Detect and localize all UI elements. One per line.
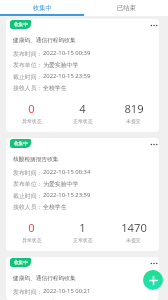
staticText: 收集中 xyxy=(14,141,28,147)
button[interactable]: 收集中 xyxy=(10,139,31,148)
staticText: 截止时间： xyxy=(13,73,43,80)
staticText: 2022-10-15 23:59 xyxy=(43,72,91,80)
staticText: 异常状态 xyxy=(22,118,42,124)
staticText: 全校学生 xyxy=(43,203,67,210)
staticText: 发布时间： xyxy=(13,50,43,57)
staticText: 0 xyxy=(28,101,35,116)
staticText: 收集中 xyxy=(14,260,28,266)
button[interactable]: 0 xyxy=(6,101,57,124)
staticText: 为爱实验中学 xyxy=(43,299,79,300)
staticText: 正常状态 xyxy=(73,237,93,243)
button[interactable]: 收集中 xyxy=(10,20,31,29)
staticText: 健康码、通信行程码收集 xyxy=(13,275,76,282)
button[interactable]: 收集中 xyxy=(6,257,159,300)
staticText: 正常状态 xyxy=(73,118,93,124)
staticText: 发布时间： xyxy=(13,169,43,176)
staticText: 发布时间： xyxy=(13,288,43,295)
button[interactable]: More options xyxy=(146,19,159,31)
button[interactable]: 4 xyxy=(57,101,108,124)
staticText: 1 xyxy=(79,220,86,235)
staticText: 截止时间： xyxy=(13,192,43,199)
staticText: 收集中 xyxy=(33,4,52,12)
staticText: 819 xyxy=(124,101,144,116)
staticText: 接收人员： xyxy=(13,203,43,210)
staticText: 发布单位： xyxy=(13,180,43,187)
staticText: 收集中 xyxy=(14,22,28,28)
staticText: 2022-10-15 23:59 xyxy=(43,191,91,199)
staticText: 全校学生 xyxy=(43,84,67,91)
staticText: 0 xyxy=(28,220,35,235)
staticText: 4 xyxy=(79,101,86,116)
staticText: 1470 xyxy=(121,220,147,235)
staticText: 健康码、通信行程码收集 xyxy=(13,37,76,44)
staticText: 2022-10-15 00:34 xyxy=(43,168,91,176)
button[interactable]: More options xyxy=(146,138,159,150)
button[interactable]: 819 xyxy=(108,101,159,124)
staticText: 接收人员： xyxy=(13,84,43,91)
staticText: 已结束 xyxy=(117,4,136,12)
staticText: 发布单位： xyxy=(13,61,43,68)
button[interactable]: More options xyxy=(146,257,159,269)
button[interactable]: 1470 xyxy=(108,220,159,243)
button[interactable]: 收集中 xyxy=(0,0,84,15)
button[interactable]: Add xyxy=(143,270,163,290)
staticText: 未提交 xyxy=(126,118,141,124)
button[interactable]: 已结束 xyxy=(84,0,168,15)
staticText: 异常状态 xyxy=(22,237,42,243)
button[interactable]: 收集中 xyxy=(6,19,159,132)
button[interactable]: 1 xyxy=(57,220,108,243)
button[interactable]: 0 xyxy=(6,220,57,243)
staticText: 2022-10-15 00:21 xyxy=(43,287,91,295)
staticText: 为爱实验中学 xyxy=(43,61,79,68)
staticText: 核酸检测报告收集 xyxy=(13,156,59,163)
staticText: 未提交 xyxy=(126,237,141,243)
button[interactable]: 收集中 xyxy=(10,258,31,267)
staticText: 为爱实验中学 xyxy=(43,180,79,187)
button[interactable]: 收集中 xyxy=(6,138,159,251)
staticText: 2022-10-15 00:39 xyxy=(43,49,91,57)
